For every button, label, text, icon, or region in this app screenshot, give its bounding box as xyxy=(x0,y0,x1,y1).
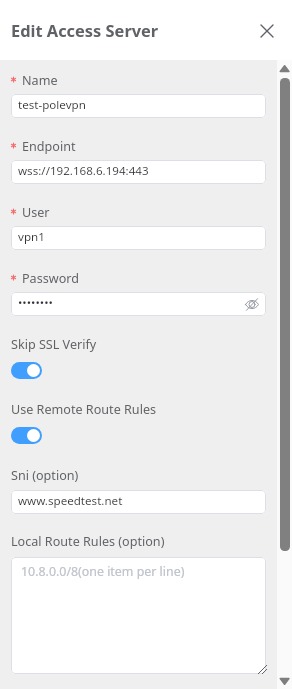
staticText: •••••••• xyxy=(18,295,53,311)
staticText: Use Remote Route Rules xyxy=(11,401,157,418)
staticText: Password xyxy=(22,270,79,287)
button[interactable]: www.speedtest.net xyxy=(11,490,266,514)
staticText: Sni (option) xyxy=(11,467,79,484)
staticText: vpn1 xyxy=(18,229,45,245)
staticText: Edit Access Server xyxy=(11,19,159,41)
button[interactable]: test-polevpn xyxy=(11,94,266,118)
staticText: Endpoint xyxy=(22,138,76,155)
button[interactable]: Close xyxy=(255,19,279,43)
button[interactable]: 10.8.0.0/8(one item per line) xyxy=(11,557,266,674)
button[interactable]: Use Remote Route Rules xyxy=(11,427,42,444)
button[interactable]: wss://192.168.6.194:443 xyxy=(11,160,266,184)
staticText: Name xyxy=(22,72,58,89)
staticText: 10.8.0.0/8(one item per line) xyxy=(21,563,185,580)
staticText: www.speedtest.net xyxy=(18,493,123,509)
staticText: Local Route Rules (option) xyxy=(11,533,165,550)
staticText: User xyxy=(22,204,50,221)
staticText: wss://192.168.6.194:443 xyxy=(18,163,149,179)
button[interactable]: vpn1 xyxy=(11,226,266,250)
button[interactable]: Scrollbar xyxy=(277,60,292,689)
staticText: Skip SSL Verify xyxy=(11,336,97,353)
button[interactable]: Skip SSL Verify xyxy=(11,362,42,379)
staticText: test-polevpn xyxy=(18,97,86,113)
button[interactable]: •••••••• xyxy=(11,292,266,316)
